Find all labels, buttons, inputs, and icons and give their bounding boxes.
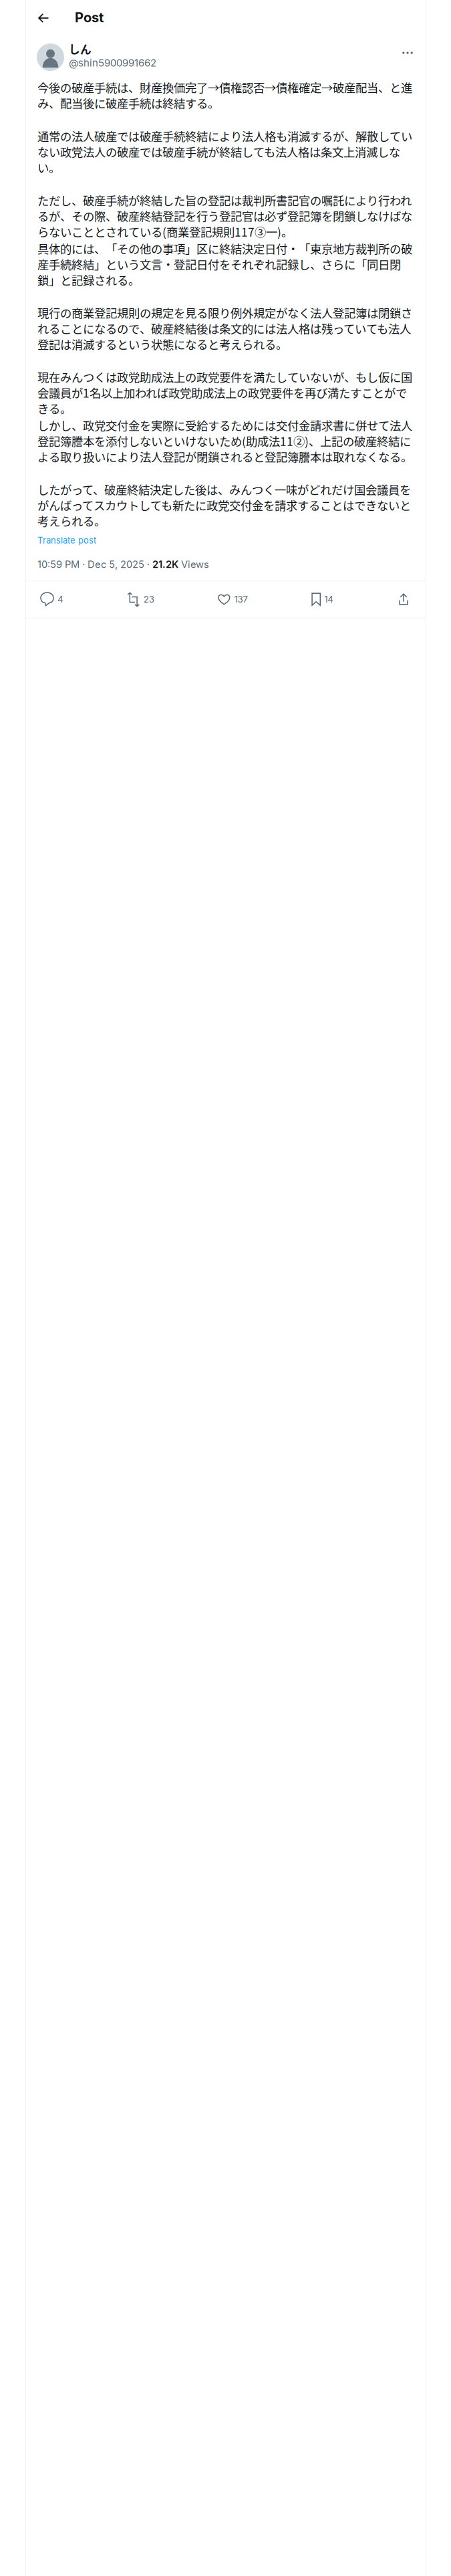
staticText: Views [178,558,209,570]
staticText: 23 [143,594,154,605]
button[interactable]: More [402,43,413,58]
button[interactable]: Bookmark [312,588,334,611]
staticText: @shin5900991662 [69,57,156,69]
staticText: 10:59 PM · Dec 5, 2025 · [37,558,152,570]
button[interactable]: Translate post [26,529,96,548]
staticText: 137 [234,594,248,605]
staticText: しかし、政党交付金を実際に受給するためには交付金請求書に併せて法人登記簿謄本を添… [37,417,412,465]
button[interactable]: Repost [127,588,154,611]
staticText: 今後の破産手続は、財産換価完了→債権認否→債権確定→破産配当、と進み、配当後に破… [37,79,412,111]
button[interactable]: Back [32,4,55,27]
button[interactable]: Share [398,588,410,611]
staticText: Post [75,9,104,25]
staticText: 4 [57,594,63,605]
staticText: 21.2K [152,558,178,570]
staticText: 現行の商業登記規則の規定を見る限り例外規定がなく法人登記簿は閉鎖されることになる… [37,304,412,352]
button[interactable]: Profile photo [37,43,64,71]
button[interactable]: Like [218,588,248,611]
staticText: ただし、破産手続が終結した旨の登記は裁判所書記官の嘱託により行われるが、その際、… [37,192,412,240]
staticText: Translate post [37,535,96,546]
button[interactable]: Reply [41,588,63,611]
staticText: 具体的には、「その他の事項」区に終結決定日付・「東京地方裁判所の破産手続終結」と… [37,240,412,288]
staticText: したがって、破産終結決定した後は、みんつく一味がどれだけ国会議員をがんばってスカ… [37,481,411,529]
staticText: 通常の法人破産では破産手続終結により法人格も消滅するが、解散していない政党法人の… [37,127,412,176]
staticText: 14 [324,594,334,605]
staticText: しん [69,41,92,57]
staticText: 現在みんつくは政党助成法上の政党要件を満たしていないが、もし仮に国会議員が1名以… [37,368,412,417]
